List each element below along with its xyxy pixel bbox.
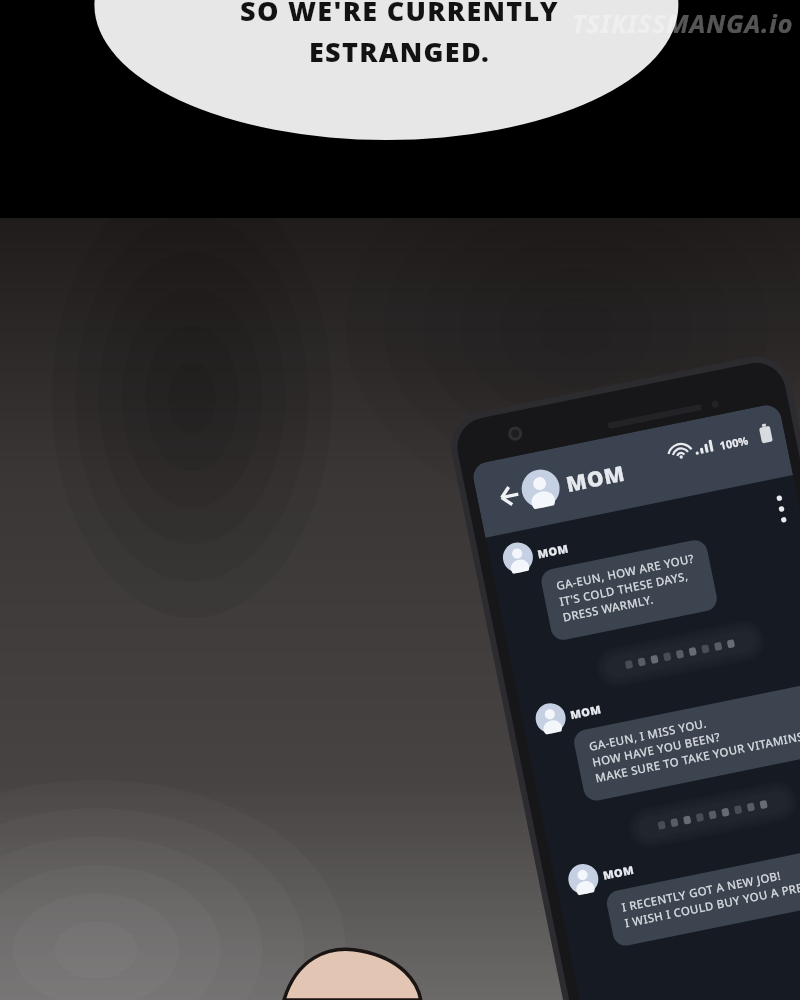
button[interactable]: Comic panel: phone showing chat with Mom — [0, 0, 800, 1000]
